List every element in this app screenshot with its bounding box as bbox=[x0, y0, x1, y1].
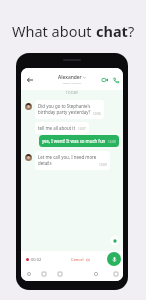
staticText: Cancel bbox=[71, 257, 84, 262]
button[interactable]: Nav 2 bbox=[55, 269, 65, 279]
button[interactable]: Nav 0 bbox=[24, 269, 34, 279]
staticText: Today 12:40 PM bbox=[63, 81, 81, 84]
button[interactable]: Back bbox=[24, 74, 35, 85]
staticText: 12:08 bbox=[108, 140, 116, 144]
button[interactable]: Nav 1 bbox=[39, 269, 49, 279]
staticText: 12:07 bbox=[78, 127, 86, 131]
button[interactable]: Record voice message bbox=[107, 252, 121, 266]
button[interactable]: Nav 4 bbox=[111, 269, 121, 279]
staticText: 12:06 bbox=[93, 112, 101, 116]
staticText: Let me call you, I need more details bbox=[38, 154, 97, 167]
staticText: Did you go to Stephanie's birthday party… bbox=[38, 103, 91, 116]
staticText: 12:09 bbox=[99, 163, 107, 167]
staticText: yes, I went! It was so much fun bbox=[42, 138, 106, 144]
staticText: Alexander bbox=[58, 74, 82, 81]
staticText: tell me all about it bbox=[38, 125, 76, 131]
staticText: chat bbox=[96, 21, 128, 41]
button[interactable]: Video call bbox=[99, 74, 110, 85]
button[interactable]: Nav 3 bbox=[91, 269, 101, 279]
button[interactable]: Scroll to latest bbox=[110, 236, 119, 245]
staticText: 00:02 bbox=[31, 257, 42, 262]
staticText: What about bbox=[12, 21, 96, 41]
staticText: ? bbox=[128, 21, 135, 41]
button[interactable]: Cancel bbox=[71, 257, 84, 262]
staticText: TODAY bbox=[21, 90, 123, 95]
button[interactable]: Call bbox=[110, 74, 121, 85]
